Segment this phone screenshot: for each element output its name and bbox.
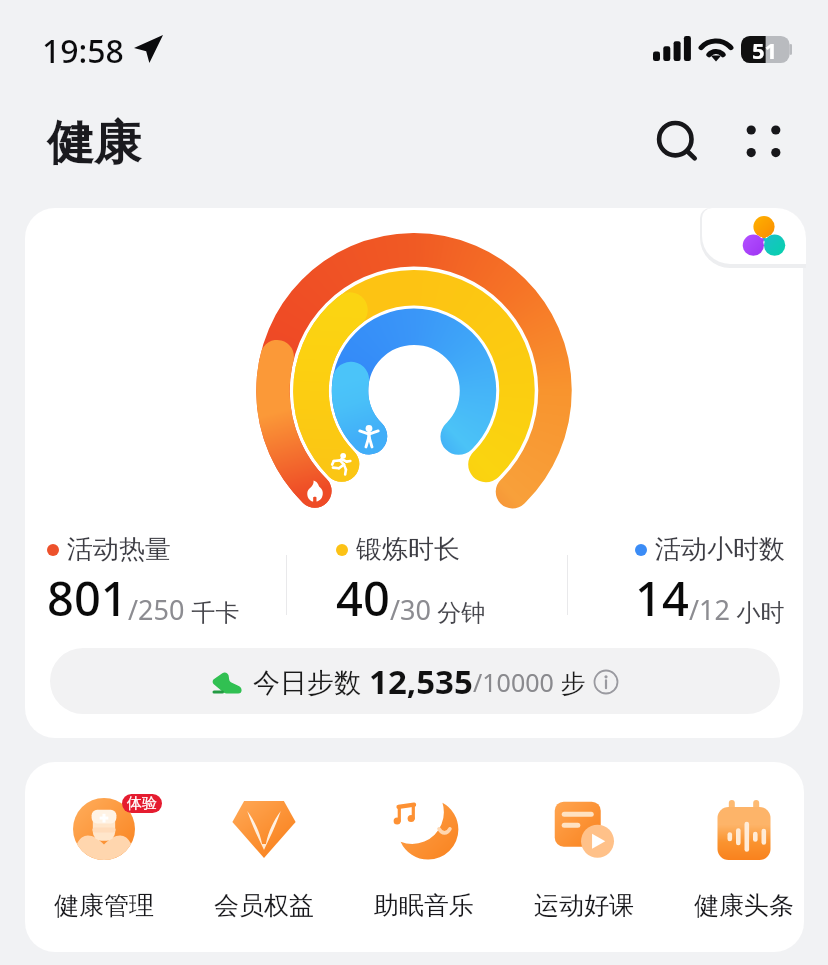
button[interactable]: More options [733, 111, 793, 171]
button[interactable]: 会员权益 [186, 788, 342, 921]
staticText: /30 [390, 591, 431, 628]
button[interactable]: 体验 [26, 788, 182, 921]
staticText: 51 [752, 35, 778, 62]
staticText: 健康管理 [54, 890, 154, 921]
staticText: 小时 [730, 595, 785, 628]
staticText: 12,535 [369, 659, 473, 704]
staticText: /250 [128, 591, 185, 628]
staticText: 分钟 [431, 595, 486, 628]
staticText: 14 [635, 566, 689, 630]
staticText: 锻炼时长 [356, 533, 460, 566]
staticText: 健康 [47, 114, 141, 173]
button[interactable]: Search [648, 120, 708, 180]
staticText: 体验 [127, 794, 157, 813]
staticText: 19:58 [42, 29, 124, 73]
staticText: 健康头条 [694, 890, 794, 921]
button[interactable]: 健康头条 [666, 788, 804, 921]
staticText: /10000 [473, 665, 554, 699]
button[interactable]: 活动热量 [25, 208, 803, 738]
staticText: 千卡 [185, 595, 240, 628]
staticText: 运动好课 [534, 890, 634, 921]
staticText: 会员权益 [214, 890, 314, 921]
staticText: 40 [336, 566, 390, 630]
staticText: 今日步数 [253, 663, 369, 700]
staticText: 助眠音乐 [374, 890, 474, 921]
staticText: 801 [47, 566, 128, 630]
staticText: 活动小时数 [655, 533, 785, 566]
button[interactable]: 运动好课 [506, 788, 662, 921]
button[interactable]: Health assistant [702, 208, 806, 264]
button[interactable]: 今日步数 [50, 648, 780, 714]
staticText: 活动热量 [67, 533, 171, 566]
button[interactable]: 助眠音乐 [346, 788, 502, 921]
staticText: 步 [554, 665, 593, 699]
staticText: /12 [689, 591, 730, 628]
